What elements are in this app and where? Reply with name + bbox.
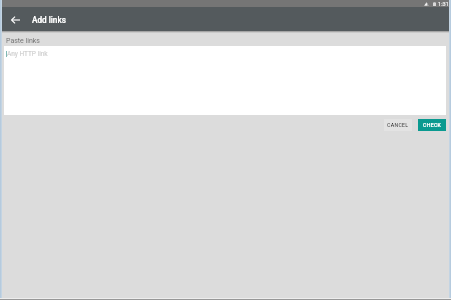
staticText: 1:31 [438,1,449,8]
staticText: Paste links [6,37,40,45]
button[interactable]: CANCEL [384,119,412,131]
staticText: CANCEL [387,122,409,128]
button[interactable]: CHECK [418,119,446,131]
button[interactable]: Navigate up [7,11,24,28]
staticText: CHECK [423,122,442,128]
staticText: Add links [32,15,66,25]
staticText: Any HTTP link [7,50,48,58]
